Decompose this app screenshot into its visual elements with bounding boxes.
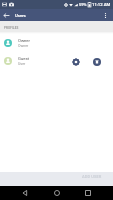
staticText: User bbox=[18, 62, 26, 66]
button[interactable]: Home bbox=[50, 186, 64, 200]
staticText: Users bbox=[15, 13, 26, 18]
staticText: Owner bbox=[18, 44, 29, 48]
button[interactable]: Back bbox=[18, 186, 32, 200]
staticText: 11:12 AM bbox=[92, 2, 111, 7]
button[interactable]: Owner bbox=[0, 34, 113, 52]
staticText: ADD USER bbox=[82, 174, 102, 179]
button[interactable]: Recent apps bbox=[81, 186, 95, 200]
button[interactable]: ADD USER bbox=[82, 174, 102, 179]
button[interactable]: Navigate up bbox=[0, 9, 12, 21]
button[interactable]: User settings bbox=[69, 55, 83, 69]
button[interactable]: Remove guest bbox=[90, 55, 104, 69]
button[interactable]: Guest bbox=[0, 52, 113, 70]
button[interactable]: More options bbox=[99, 9, 111, 21]
staticText: Guest bbox=[18, 56, 29, 61]
staticText: Owner bbox=[18, 38, 30, 43]
staticText: 59% bbox=[79, 2, 87, 7]
staticText: PROFILES bbox=[4, 26, 19, 30]
